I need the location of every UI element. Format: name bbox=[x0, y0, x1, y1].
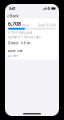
staticText: Back bbox=[10, 13, 19, 18]
button[interactable]: ‹ bbox=[7, 13, 19, 18]
staticText: 42 min bbox=[8, 54, 18, 57]
staticText: steps bbox=[22, 24, 29, 27]
staticText: Updated 2 minutes ago bbox=[8, 35, 41, 39]
staticText: 6,708 bbox=[8, 20, 21, 27]
staticText: ‹ bbox=[7, 12, 9, 19]
staticText: Active Time bbox=[8, 49, 23, 53]
staticText: 67% of daily goal bbox=[8, 31, 32, 34]
staticText: Goal 10,000 bbox=[38, 24, 56, 27]
staticText: Distance 4.8 km bbox=[8, 42, 30, 45]
staticText: 9:41 bbox=[8, 6, 15, 11]
